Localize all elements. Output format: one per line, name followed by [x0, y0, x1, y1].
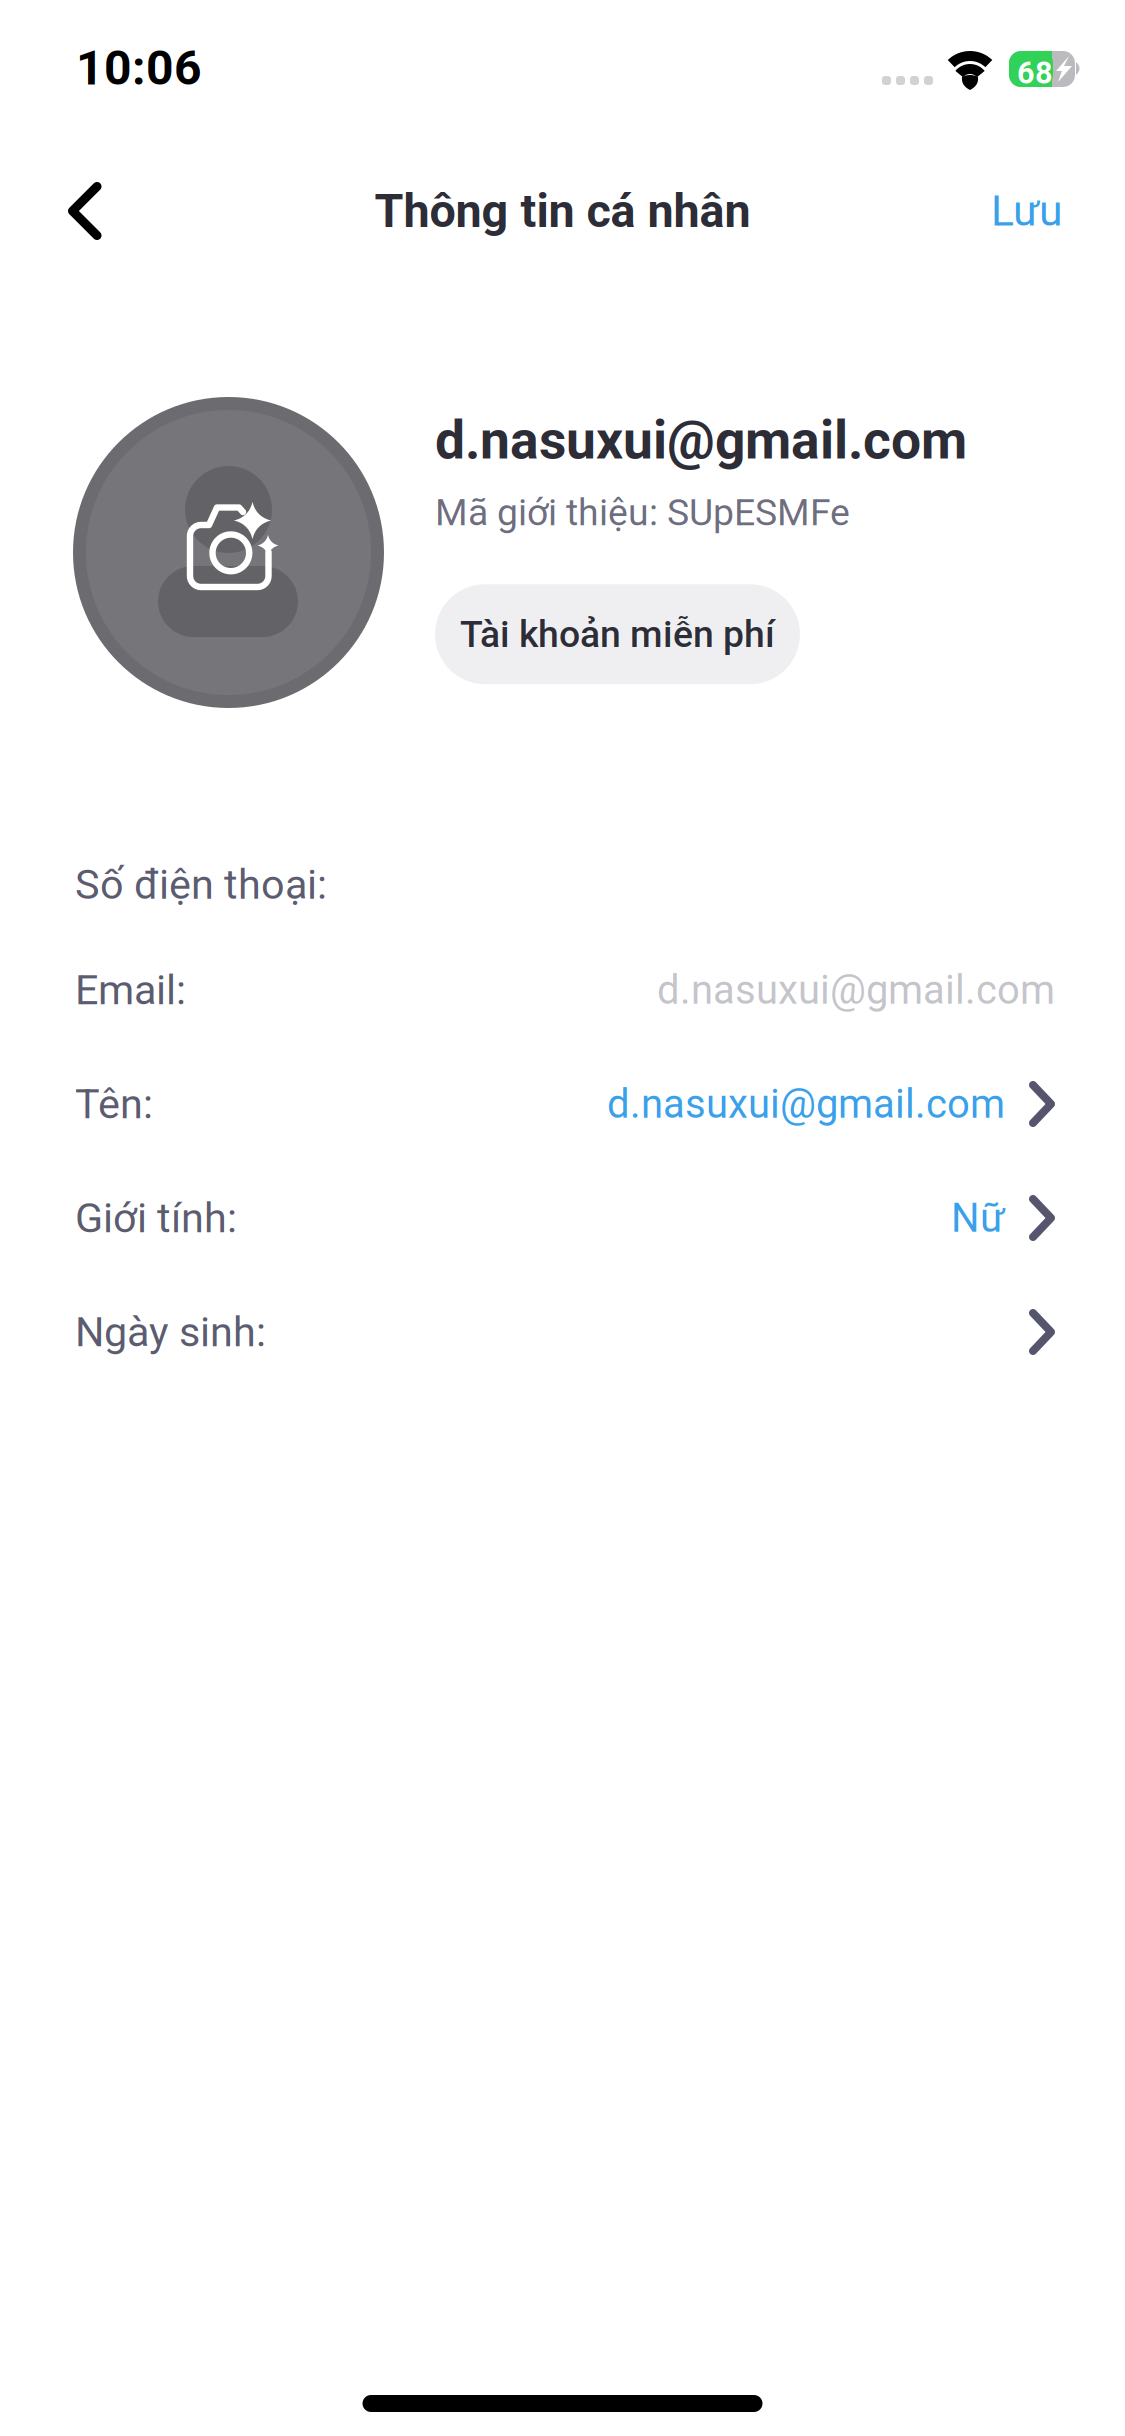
- staticText: Giới tính:: [75, 1194, 237, 1242]
- staticText: d.nasuxui@gmail.com: [607, 1081, 1005, 1127]
- staticText: Email:: [75, 966, 186, 1014]
- staticText: Lưu: [991, 186, 1063, 236]
- button[interactable]: Số điện thoại:: [0, 836, 1125, 933]
- staticText: Ngày sinh:: [75, 1308, 266, 1356]
- button[interactable]: Email:: [0, 933, 1125, 1047]
- button[interactable]: Giới tính:: [0, 1161, 1125, 1275]
- staticText: d.nasuxui@gmail.com: [657, 967, 1055, 1013]
- button[interactable]: Tài khoản miễn phí: [435, 584, 800, 684]
- staticText: Nữ: [951, 1195, 1005, 1241]
- staticText: 68: [1017, 55, 1053, 91]
- staticText: Số điện thoại:: [75, 860, 327, 909]
- staticText: Tài khoản miễn phí: [460, 612, 775, 656]
- button[interactable]: Back: [0, 154, 135, 268]
- staticText: Tên:: [75, 1080, 153, 1128]
- button[interactable]: Change profile photo: [73, 397, 384, 708]
- staticText: d.nasuxui@gmail.com: [435, 409, 967, 471]
- staticText: 10:06: [76, 40, 202, 96]
- button[interactable]: Lưu: [951, 156, 1125, 266]
- button[interactable]: Ngày sinh:: [0, 1275, 1125, 1389]
- staticText: Thông tin cá nhân: [374, 184, 750, 238]
- staticText: Mã giới thiệu: SUpESMFe: [435, 490, 850, 534]
- button[interactable]: Tên:: [0, 1047, 1125, 1161]
